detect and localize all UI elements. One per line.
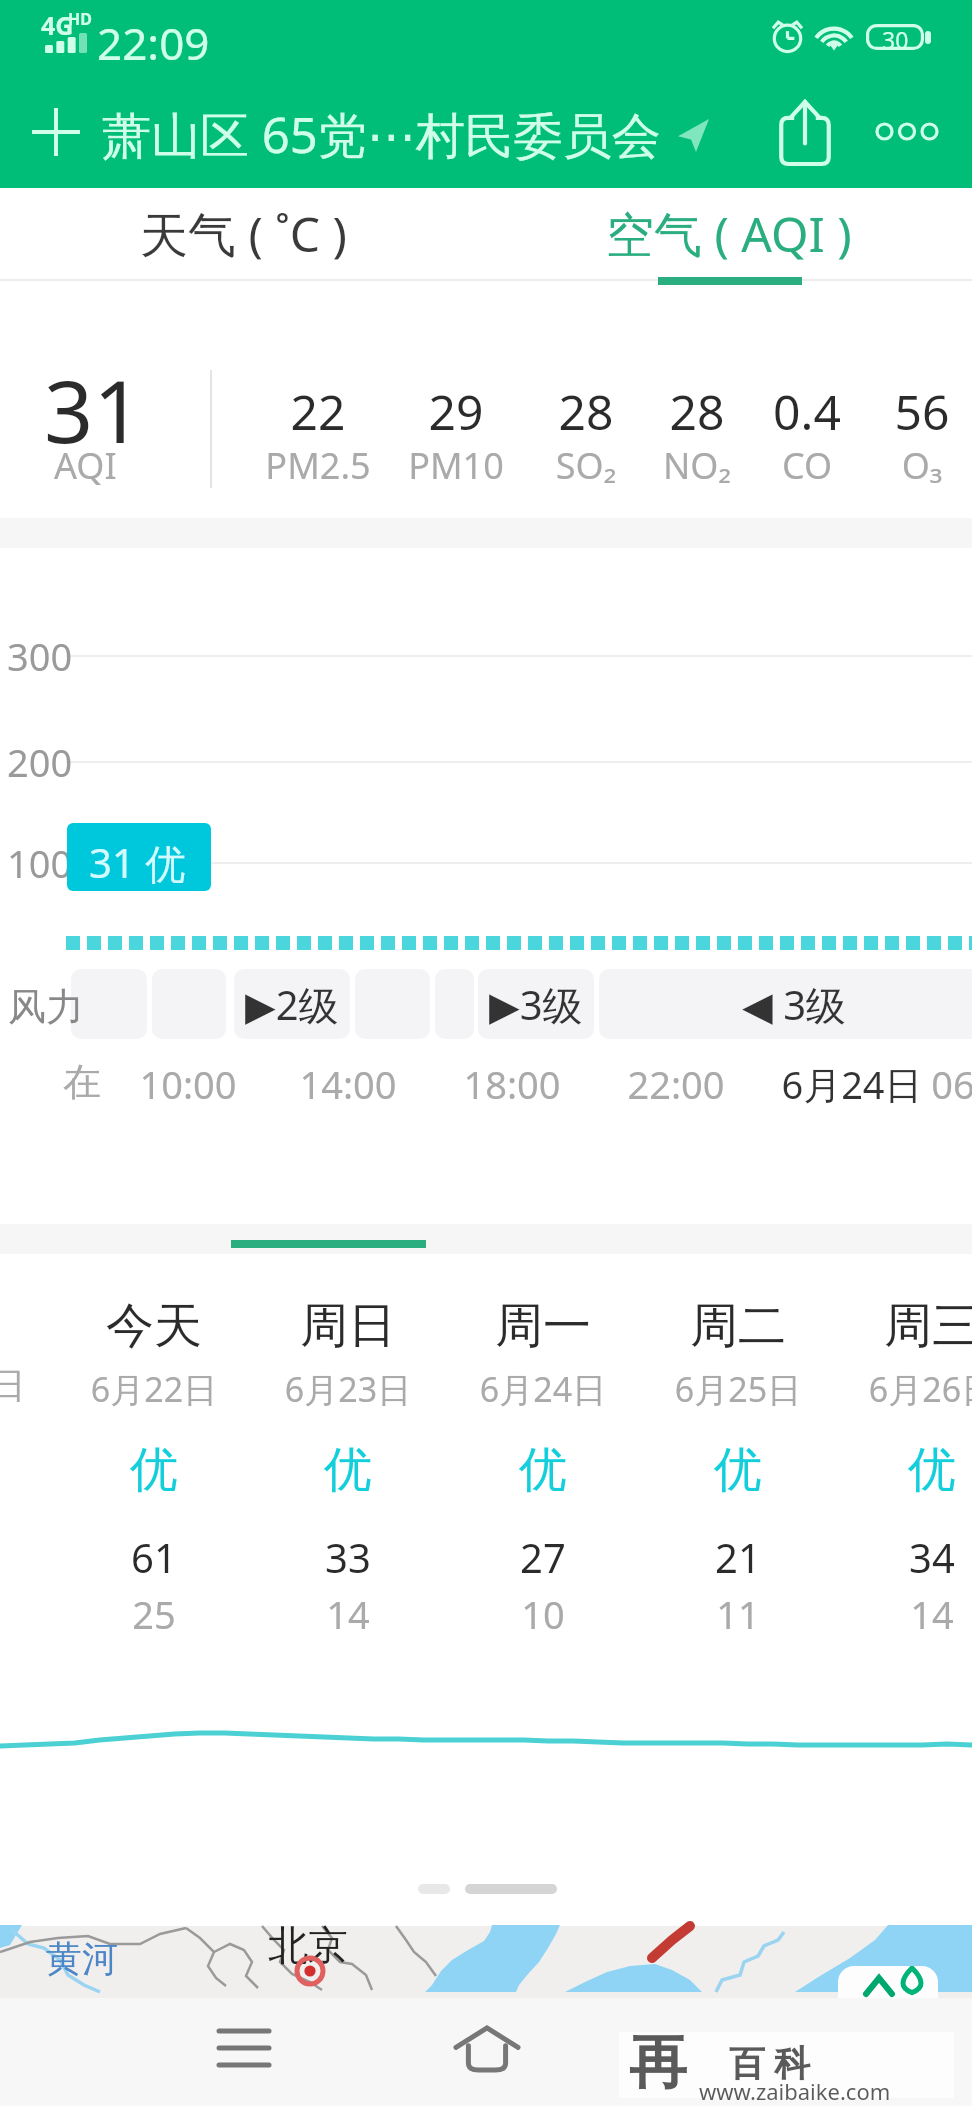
staticText: HD — [68, 8, 92, 30]
staticText: 4G — [41, 8, 74, 42]
staticText: 06: — [858, 1058, 972, 1110]
staticText: 再 — [629, 2026, 687, 2092]
staticText: 25 — [44, 1588, 264, 1640]
staticText: 21 — [628, 1530, 848, 1584]
button[interactable]: 萧山区 65党⋯村民委员会 — [102, 101, 661, 168]
staticText: 萧山区 65党⋯村民委员会 — [102, 101, 661, 168]
staticText: 6月22日 — [44, 1366, 264, 1412]
staticText: 200 — [7, 736, 73, 788]
staticText: CO — [717, 441, 897, 490]
staticText: PM2.5 — [228, 441, 408, 490]
staticText: 优 — [238, 1440, 458, 1500]
button[interactable]: Menu — [219, 2028, 269, 2068]
button[interactable]: Locate — [678, 119, 709, 152]
staticText: 14:00 — [248, 1058, 448, 1110]
staticText: 北京 — [268, 1920, 348, 1970]
staticText: 黄河 — [46, 1936, 118, 1981]
staticText: www.zaibaike.com — [699, 2076, 891, 2106]
staticText: SO₂ — [496, 441, 676, 490]
staticText: 22 — [228, 379, 408, 444]
staticText: 29 — [366, 379, 546, 444]
staticText: O₃ — [832, 441, 972, 490]
button[interactable]: Add city — [32, 108, 80, 156]
staticText: 周日 — [238, 1296, 458, 1356]
staticText: ▶2级 — [245, 977, 339, 1032]
staticText: 6月25日 — [628, 1366, 848, 1412]
staticText: ▶3级 — [489, 977, 583, 1032]
staticText: 6月26日 — [822, 1366, 972, 1412]
staticText: 0.4 — [717, 379, 897, 444]
staticText: 100 — [7, 837, 73, 889]
staticText: 优 — [822, 1440, 972, 1500]
staticText: 300 — [7, 630, 73, 682]
staticText: 优 — [433, 1440, 653, 1500]
staticText: 周二 — [628, 1296, 848, 1356]
staticText: 28 — [496, 379, 676, 444]
staticText: 14 — [822, 1588, 972, 1640]
button[interactable]: 天气 ( ˚C ) — [100, 188, 386, 280]
staticText: 33 — [238, 1530, 458, 1584]
button[interactable]: Share — [778, 100, 832, 164]
button[interactable]: 空气 ( AQI ) — [586, 188, 872, 280]
staticText: 在 — [0, 1058, 182, 1106]
staticText: 今天 — [44, 1296, 264, 1356]
staticText: 22:00 — [576, 1058, 776, 1110]
staticText: 优 — [628, 1440, 848, 1500]
staticText: 56 — [832, 379, 972, 444]
button[interactable]: More options — [877, 123, 938, 140]
staticText: 6月21日 — [0, 1360, 59, 1409]
staticText: ◀ 3级 — [742, 977, 847, 1032]
staticText: 28 — [607, 379, 787, 444]
staticText: 周一 — [433, 1296, 653, 1356]
staticText: 34 — [822, 1530, 972, 1584]
staticText: 周三 — [822, 1296, 972, 1356]
staticText: 天气 ( ˚C ) — [140, 201, 347, 267]
staticText: 22:09 — [97, 13, 210, 73]
staticText: NO₂ — [607, 441, 787, 490]
staticText: 31 优 — [89, 835, 186, 890]
staticText: 10:00 — [88, 1058, 288, 1110]
staticText: 风力 — [8, 983, 84, 1031]
button[interactable]: Home — [456, 2028, 518, 2070]
staticText: 27 — [433, 1530, 653, 1584]
staticText: 6月24日 — [433, 1366, 653, 1412]
staticText: 18:00 — [412, 1058, 612, 1110]
staticText: 11 — [628, 1588, 848, 1640]
staticText: 31 — [44, 351, 143, 468]
staticText: 空气 ( AQI ) — [606, 201, 852, 267]
staticText: 百 科 — [729, 2038, 811, 2087]
staticText: 优 — [44, 1440, 264, 1500]
staticText: 14 — [238, 1588, 458, 1640]
staticText: 10 — [433, 1588, 653, 1640]
staticText: AQI — [54, 441, 117, 490]
staticText: 61 — [44, 1530, 264, 1584]
staticText: 6月23日 — [238, 1366, 458, 1412]
staticText: PM10 — [366, 441, 546, 490]
staticText: 6月24日 — [752, 1058, 952, 1110]
staticText: 30 — [882, 24, 909, 50]
